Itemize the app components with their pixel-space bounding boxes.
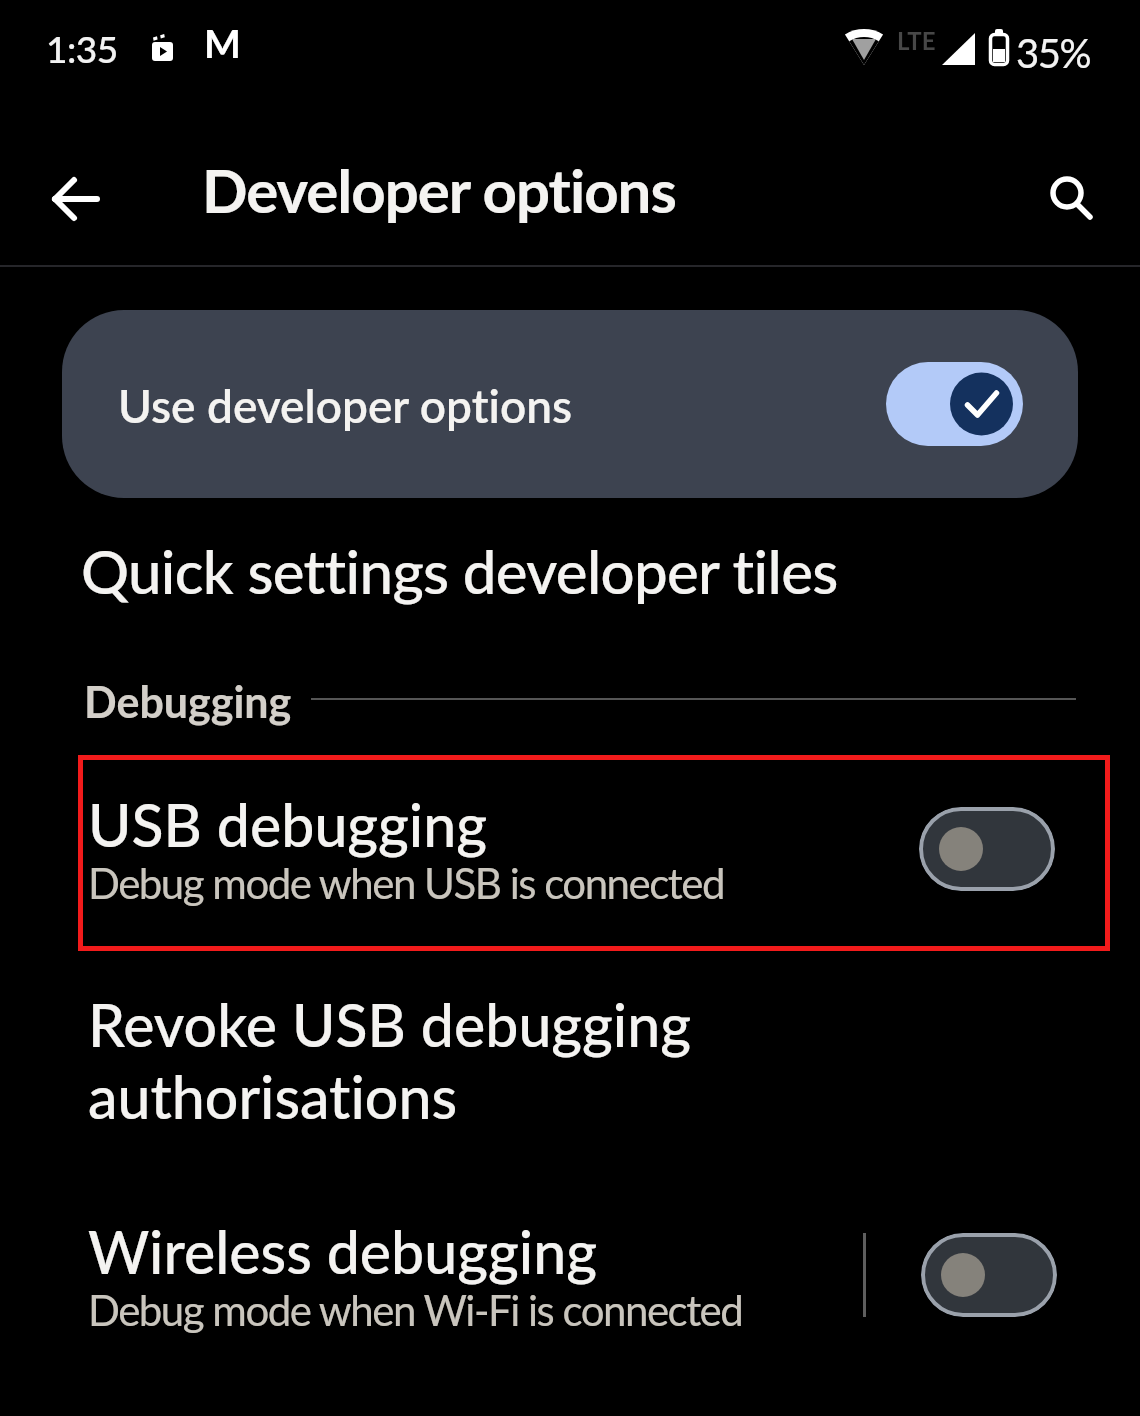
staticText: Debug mode when USB is connected bbox=[88, 858, 724, 908]
button[interactable] bbox=[0, 524, 1140, 634]
button[interactable] bbox=[40, 172, 110, 228]
staticText: Use developer options bbox=[118, 378, 573, 433]
staticText: Wireless debugging bbox=[88, 1216, 597, 1287]
staticText: Debug mode when Wi-Fi is connected bbox=[88, 1285, 743, 1335]
staticText: LTE bbox=[897, 26, 936, 55]
button[interactable]: USB debugging bbox=[78, 755, 1110, 951]
staticText: 1:35 bbox=[46, 26, 118, 70]
button[interactable] bbox=[919, 807, 1055, 891]
button[interactable] bbox=[886, 362, 1023, 446]
staticText: Quick settings developer tiles bbox=[81, 535, 838, 607]
staticText: Revoke USB debugging authorisations bbox=[88, 989, 692, 1132]
staticText: 35% bbox=[1016, 29, 1090, 77]
staticText: M bbox=[204, 20, 241, 67]
staticText: Debugging bbox=[84, 676, 292, 728]
button[interactable] bbox=[0, 980, 1140, 1150]
button[interactable]: Use developer options bbox=[62, 310, 1078, 498]
staticText: Developer options bbox=[202, 154, 676, 226]
button[interactable] bbox=[0, 1205, 1140, 1355]
button[interactable] bbox=[1040, 168, 1104, 228]
staticText: USB debugging bbox=[88, 789, 488, 860]
button[interactable] bbox=[921, 1233, 1057, 1317]
